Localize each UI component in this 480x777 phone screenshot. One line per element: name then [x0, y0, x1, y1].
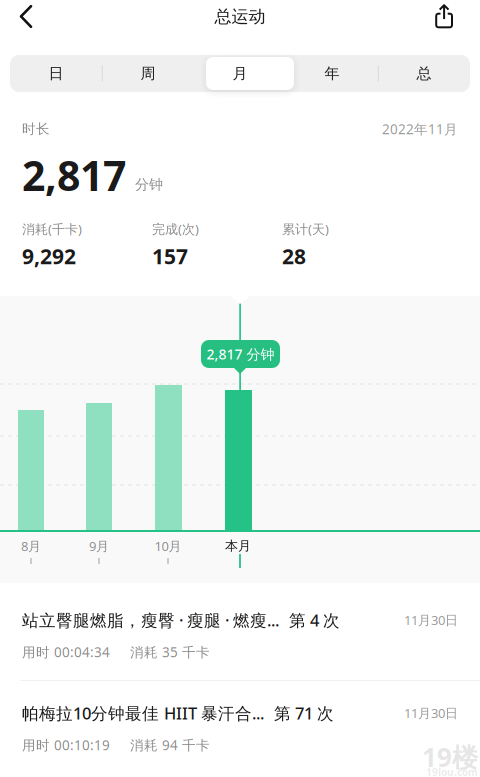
staticText: 累计(天) — [282, 220, 329, 238]
staticText: 周 — [140, 64, 155, 83]
button[interactable] — [421, 4, 480, 28]
staticText: 用时 00:04:34 — [22, 643, 110, 661]
staticText: 用时 00:10:19 — [22, 736, 110, 754]
button[interactable]: 日 — [10, 55, 102, 92]
staticText: 19lou.com — [426, 765, 478, 777]
staticText: 19楼 — [422, 739, 478, 775]
staticText: 9,292 — [22, 242, 76, 270]
staticText: 总运动 — [214, 6, 265, 27]
staticText: 本月 — [225, 538, 251, 554]
staticText: 日 — [48, 64, 63, 83]
button[interactable]: 周 — [102, 55, 194, 92]
staticText: 10月 — [154, 537, 181, 555]
staticText: 2022年11月 — [382, 120, 458, 138]
staticText: 消耗 35 千卡 — [130, 643, 210, 661]
staticText: 第 4 次 — [289, 609, 340, 631]
staticText: 11月30日 — [404, 704, 458, 722]
button[interactable]: 帕梅拉10分钟最佳 HIIT 暴汗合... — [0, 681, 480, 776]
staticText: 月 — [232, 64, 247, 83]
button[interactable] — [0, 5, 48, 27]
staticText: 11月30日 — [404, 611, 458, 629]
staticText: 完成(次) — [152, 220, 199, 238]
staticText: 2,817 分钟 — [206, 344, 274, 364]
staticText: 8月 — [21, 537, 41, 555]
staticText: 157 — [152, 242, 188, 270]
button[interactable]: 站立臀腿燃脂，瘦臀 · 瘦腿 · 燃瘦... — [0, 583, 480, 680]
staticText: 时长 — [22, 120, 50, 137]
staticText: 28 — [282, 242, 306, 270]
staticText: 第 71 次 — [274, 702, 334, 724]
button[interactable]: 总 — [378, 55, 470, 92]
button[interactable]: 月 — [194, 55, 286, 92]
button[interactable]: 年 — [286, 55, 378, 92]
staticText: 消耗(千卡) — [22, 220, 82, 238]
staticText: 消耗 94 千卡 — [130, 736, 210, 754]
staticText: 站立臀腿燃脂，瘦臀 · 瘦腿 · 燃瘦... — [22, 609, 279, 631]
staticText: 2,817 — [22, 147, 126, 203]
staticText: 分钟 — [135, 176, 163, 193]
staticText: 年 — [324, 64, 339, 83]
staticText: 帕梅拉10分钟最佳 HIIT 暴汗合... — [22, 702, 264, 724]
staticText: 9月 — [89, 537, 109, 555]
staticText: 总 — [416, 64, 431, 83]
